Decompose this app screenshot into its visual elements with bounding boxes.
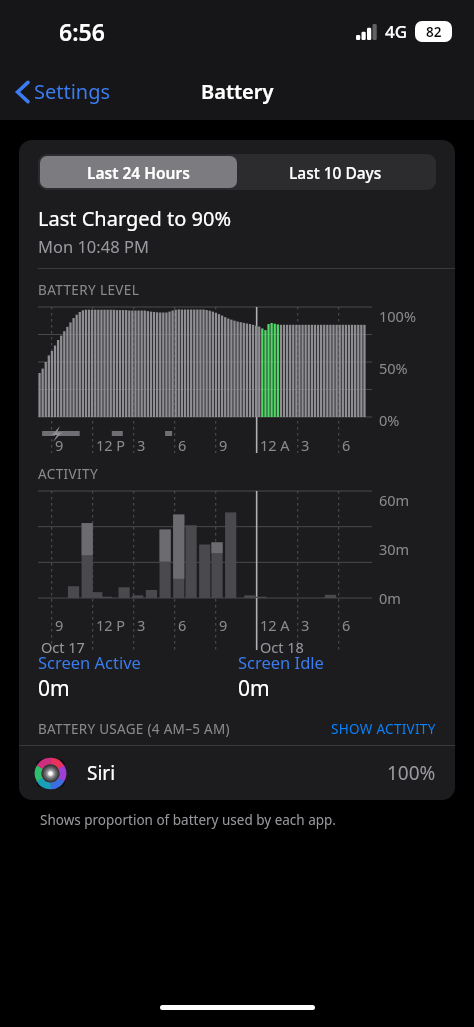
staticText: 12 P: [96, 435, 126, 455]
staticText: 6: [342, 615, 351, 635]
staticText: 9: [55, 615, 64, 635]
staticText: Battery: [201, 78, 274, 105]
staticText: ACTIVITY: [38, 465, 98, 483]
staticText: 0m: [238, 674, 270, 703]
staticText: Siri: [87, 760, 116, 786]
staticText: 12 P: [96, 615, 126, 635]
button[interactable]: Last 10 Days: [237, 156, 434, 188]
staticText: 82: [426, 23, 442, 41]
staticText: 100%: [379, 306, 416, 326]
staticText: 3: [137, 435, 146, 455]
staticText: 9: [219, 615, 228, 635]
button[interactable]: Settings: [12, 72, 115, 111]
staticText: 0m: [38, 674, 70, 703]
staticText: 50%: [379, 358, 408, 378]
staticText: 60m: [379, 490, 410, 510]
staticText: 9: [219, 435, 228, 455]
staticText: Last Charged to 90%: [38, 205, 232, 232]
staticText: 12 A: [260, 435, 290, 455]
staticText: SHOW ACTIVITY: [331, 720, 436, 738]
staticText: Oct 17: [41, 637, 85, 657]
staticText: Screen Idle: [238, 651, 324, 673]
staticText: 30m: [379, 539, 410, 559]
staticText: 0%: [379, 410, 400, 430]
staticText: Last 10 Days: [289, 162, 382, 183]
staticText: 3: [301, 615, 310, 635]
staticText: Mon 10:48 PM: [38, 235, 149, 257]
staticText: Screen Active: [38, 651, 141, 673]
staticText: 100%: [387, 760, 436, 786]
staticText: 6: [178, 435, 187, 455]
staticText: 6: [178, 615, 187, 635]
staticText: BATTERY USAGE (4 AM–5 AM): [38, 720, 230, 738]
button[interactable]: SHOW ACTIVITY: [331, 720, 436, 738]
staticText: Settings: [34, 78, 111, 105]
staticText: 6: [342, 435, 351, 455]
button[interactable]: Siri: [19, 746, 455, 800]
staticText: 0m: [379, 588, 401, 608]
staticText: Last 24 Hours: [87, 162, 190, 183]
staticText: 4G: [385, 20, 408, 43]
staticText: 9: [55, 435, 64, 455]
staticText: 12 A: [260, 615, 290, 635]
staticText: 3: [301, 435, 310, 455]
button[interactable]: Last 24 Hours: [40, 156, 237, 188]
staticText: BATTERY LEVEL: [38, 281, 140, 299]
staticText: 6:56: [59, 16, 105, 47]
staticText: Shows proportion of battery used by each…: [40, 811, 336, 829]
staticText: Oct 18: [260, 637, 304, 657]
staticText: 3: [137, 615, 146, 635]
